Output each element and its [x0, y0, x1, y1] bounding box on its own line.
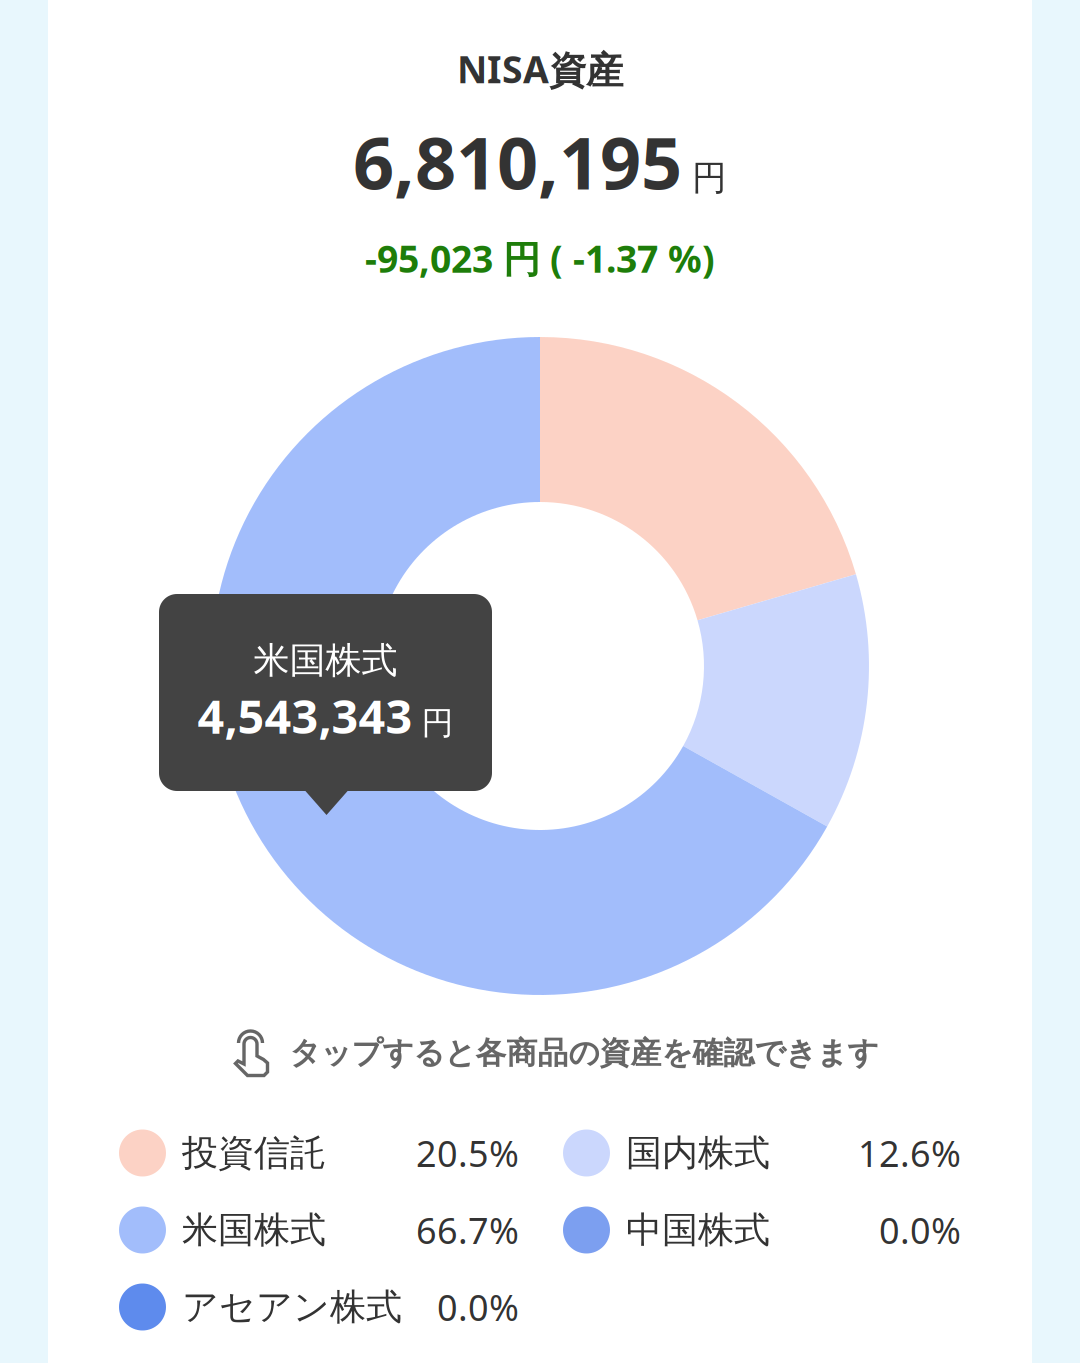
button[interactable]: 資産構成チャート	[0, 0, 1080, 1363]
staticText: 20.5%	[416, 1129, 519, 1177]
staticText: 4,543,343	[197, 685, 412, 747]
staticText: 円	[692, 157, 727, 199]
button[interactable]: 中国株式	[563, 1195, 961, 1265]
staticText: 米国株式	[253, 638, 397, 683]
staticText: 国内株式	[626, 1131, 770, 1175]
staticText: 米国株式	[182, 1208, 326, 1252]
button[interactable]: 国内株式	[563, 1118, 961, 1188]
staticText: 投資信託	[182, 1131, 326, 1175]
button[interactable]: アセアン株式	[119, 1272, 519, 1342]
staticText: 中国株式	[626, 1208, 770, 1252]
staticText: 0.0%	[437, 1283, 519, 1331]
staticText: アセアン株式	[182, 1285, 402, 1329]
staticText: -95,023 円 ( -1.37 %)	[365, 233, 715, 283]
button[interactable]: 米国株式	[119, 1195, 519, 1265]
staticText: 円	[421, 703, 453, 743]
staticText: NISA資産	[457, 44, 623, 94]
staticText: タップすると各商品の資産を確認できます	[289, 1034, 878, 1072]
staticText: 66.7%	[416, 1206, 519, 1254]
staticText: 6,810,195	[353, 114, 682, 209]
staticText: 12.6%	[858, 1129, 961, 1177]
staticText: 0.0%	[879, 1206, 961, 1254]
button[interactable]: 投資信託	[119, 1118, 519, 1188]
